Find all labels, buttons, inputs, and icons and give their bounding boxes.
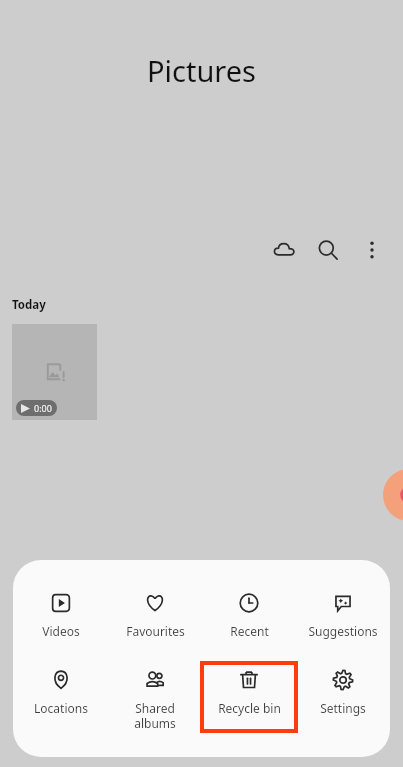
staticText: Videos <box>42 623 80 639</box>
button[interactable]: Search <box>306 228 350 272</box>
button[interactable]: Settings <box>296 663 390 716</box>
button[interactable]: Cloud sync <box>262 228 306 272</box>
staticText: Shared albums <box>134 700 176 731</box>
staticText: Today <box>12 297 46 313</box>
staticText: 0:00 <box>34 402 52 414</box>
button[interactable]: Create <box>383 469 403 521</box>
button[interactable]: More options <box>350 228 394 272</box>
button[interactable]: Suggestions <box>296 586 390 639</box>
button[interactable]: Recycle bin <box>202 663 296 731</box>
button[interactable]: Video thumbnail <box>12 324 97 420</box>
button[interactable]: Videos <box>14 586 108 639</box>
staticText: Recycle bin <box>218 700 281 716</box>
staticText: Suggestions <box>308 623 378 639</box>
button[interactable]: Favourites <box>108 586 202 639</box>
button[interactable]: Recent <box>202 586 296 639</box>
staticText: Favourites <box>126 623 185 639</box>
button[interactable]: Locations <box>14 663 108 716</box>
staticText: Settings <box>320 700 366 716</box>
staticText: Recent <box>230 623 269 639</box>
staticText: Locations <box>34 700 88 716</box>
staticText: Pictures <box>147 51 256 90</box>
button[interactable]: Shared albums <box>108 663 202 731</box>
